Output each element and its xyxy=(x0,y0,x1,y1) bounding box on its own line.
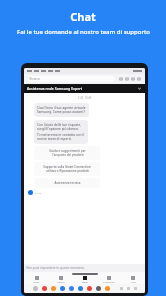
staticText: Samsung. Come posso aiutarti? xyxy=(37,110,85,114)
staticText: Home xyxy=(33,281,40,284)
button[interactable]: App icon xyxy=(42,286,47,291)
button[interactable]: Toolbar action xyxy=(125,77,129,81)
staticText: Assistenza tecnica xyxy=(54,181,81,185)
button[interactable]: Message input xyxy=(24,264,145,272)
staticText: Community xyxy=(103,281,115,284)
staticText: nostro team di esperti. xyxy=(37,137,72,141)
button[interactable]: Assistenza reale Samsung Expert xyxy=(24,84,145,93)
other: Agent avatar xyxy=(28,190,33,195)
button[interactable]: Supporto sulla Smart Connection xyxy=(34,162,100,176)
button[interactable]: Toolbar action xyxy=(131,77,135,81)
button[interactable]: Altro xyxy=(121,276,145,284)
staticText: Ti metteremo in contatto con il xyxy=(37,133,85,137)
button[interactable]: App icon xyxy=(33,286,38,291)
staticText: Ricerca xyxy=(28,77,40,81)
button[interactable]: App icon xyxy=(51,286,56,291)
button[interactable]: Address bar xyxy=(28,76,115,82)
staticText: Assistenza reale Samsung Expert xyxy=(27,86,83,91)
button[interactable]: App icon xyxy=(96,286,101,291)
staticText: Supporto sulla Smart Connection xyxy=(43,165,91,169)
staticText: Offerte xyxy=(57,281,65,284)
button[interactable]: Assistenza tecnica xyxy=(34,178,100,188)
other: Expand xyxy=(137,86,142,91)
button[interactable]: Con l'aiuto delle tue risposte, xyxy=(34,120,88,144)
staticText: Con l'aiuto delle tue risposte, xyxy=(37,123,82,127)
staticText: Ciao! Sono il tuo agente virtuale xyxy=(37,106,86,110)
staticText: Chat xyxy=(70,9,96,24)
staticText: Altro xyxy=(131,281,136,284)
button[interactable]: Guida e suggerimenti per xyxy=(34,146,100,160)
staticText: utilizzo e Riparazione prodotti xyxy=(46,169,89,173)
button[interactable]: Shop xyxy=(73,276,97,284)
button[interactable]: Offerte xyxy=(49,276,73,284)
staticText: 1:45, 12:46 xyxy=(78,96,92,100)
button[interactable]: App icon xyxy=(60,286,65,291)
staticText: Guida e suggerimenti per xyxy=(49,149,86,153)
button[interactable]: App icon xyxy=(105,286,110,291)
staticText: 12:45 xyxy=(35,191,42,194)
staticText: l'acquisto dei prodotti xyxy=(52,153,84,157)
staticText: sceglil l'opzione più idonea. xyxy=(37,127,79,131)
staticText: Fai le tue domande al nostro team di sup… xyxy=(17,28,150,36)
button[interactable]: Toolbar action xyxy=(137,77,141,81)
button[interactable]: App icon xyxy=(87,286,92,291)
staticText: Non puoi rispondere in questo momento. xyxy=(24,266,85,270)
staticText: Shop xyxy=(82,281,88,284)
button[interactable]: Community xyxy=(97,276,121,284)
button[interactable]: Toolbar action xyxy=(119,77,123,81)
button[interactable]: App icon xyxy=(78,286,83,291)
button[interactable]: App icon xyxy=(69,286,74,291)
button[interactable]: Home xyxy=(24,276,49,284)
button[interactable]: Ciao! Sono il tuo agente virtuale xyxy=(34,103,89,117)
